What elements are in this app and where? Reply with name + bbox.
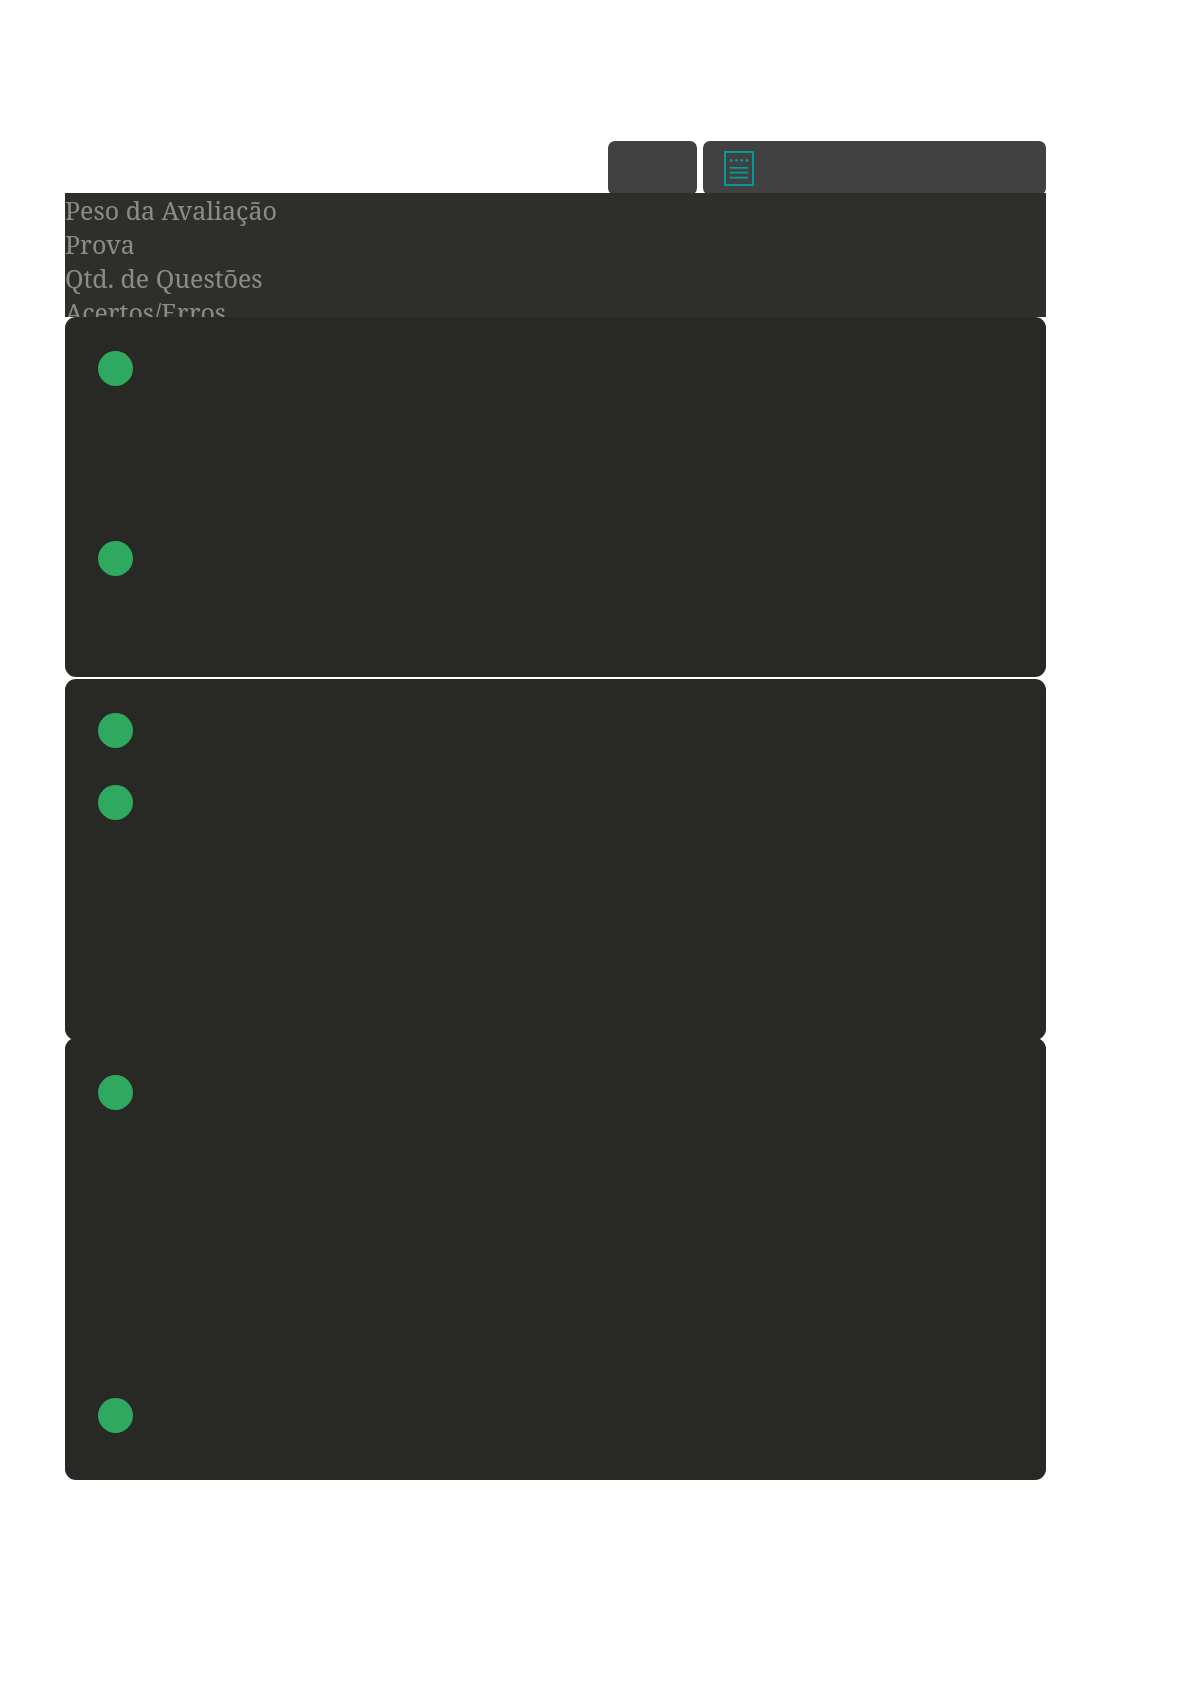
staticText: Qtd. de Questões [65,261,263,295]
staticText: Prova [65,227,135,261]
button[interactable]: Voltar [608,141,697,195]
button[interactable] [65,317,1046,677]
staticText: Peso da Avaliação [65,193,277,227]
button[interactable] [65,1038,1046,1480]
button[interactable] [65,679,1046,1040]
staticText: Acertos/Erros [65,295,227,317]
button[interactable]: Relatorio de provas [703,141,1046,195]
